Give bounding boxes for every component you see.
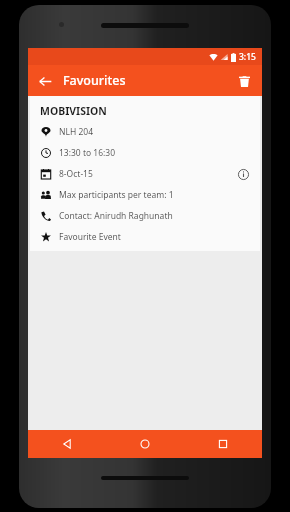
- staticText: 8-Oct-15: [59, 168, 93, 180]
- staticText: Favourite Event: [59, 231, 121, 243]
- button[interactable]: Delete: [232, 69, 256, 93]
- staticText: MOBIVISION: [40, 104, 107, 118]
- button[interactable]: Back: [33, 69, 57, 93]
- staticText: Favourites: [63, 72, 126, 89]
- button[interactable]: Home: [106, 430, 184, 458]
- staticText: NLH 204: [59, 126, 94, 138]
- button[interactable]: Recent apps: [184, 430, 262, 458]
- button[interactable]: Back: [28, 430, 106, 458]
- staticText: Contact: Anirudh Raghunath: [59, 210, 173, 222]
- staticText: Max participants per team: 1: [59, 189, 174, 201]
- staticText: 3:15: [239, 51, 256, 63]
- button[interactable]: Info: [232, 163, 254, 185]
- button[interactable]: MOBIVISION: [30, 96, 260, 251]
- staticText: 13:30 to 16:30: [59, 147, 116, 159]
